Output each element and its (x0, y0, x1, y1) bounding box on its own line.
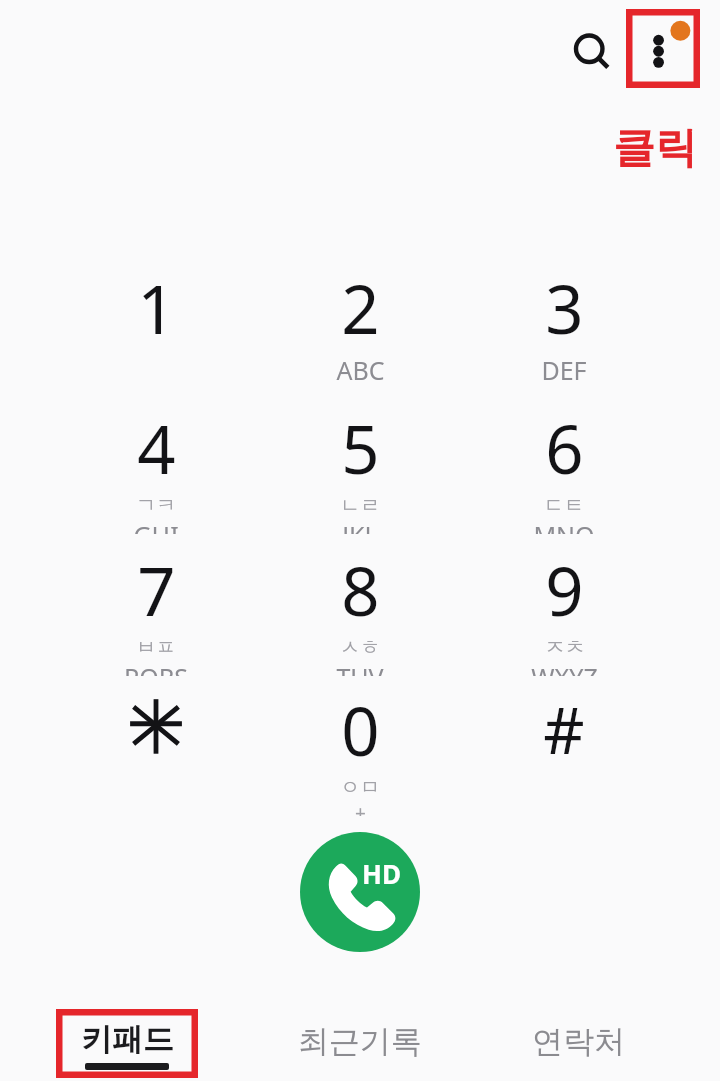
button[interactable]: 3 (472, 262, 656, 394)
button[interactable]: 7 (64, 544, 248, 676)
staticText: ㄷㅌ (544, 493, 584, 518)
button[interactable]: 8 (268, 544, 452, 676)
button[interactable]: 최근기록 (270, 1013, 450, 1075)
staticText: ABC (336, 353, 385, 387)
staticText: PQRS (124, 660, 188, 676)
button[interactable]: 0 (268, 684, 452, 816)
staticText: HD (362, 856, 401, 891)
button[interactable]: 9 (472, 544, 656, 676)
staticText: ㅇㅁ (340, 775, 380, 800)
staticText: 3 (545, 262, 584, 353)
staticText: 키패드 (81, 1020, 174, 1059)
staticText: ㄱㅋ (136, 493, 176, 518)
staticText: ㅂㅍ (136, 635, 176, 660)
button[interactable]: 연락처 (488, 1013, 668, 1075)
staticText: TUV (336, 660, 384, 676)
staticText: 클릭 (613, 122, 697, 175)
staticText: DEF (541, 353, 587, 387)
button[interactable]: 2 (268, 262, 452, 394)
button[interactable]: Call (300, 832, 420, 952)
staticText: 연락처 (532, 1022, 625, 1061)
staticText: 4 (137, 402, 176, 493)
staticText: 최근기록 (298, 1022, 422, 1061)
staticText: + (355, 800, 366, 816)
button[interactable]: 4 (64, 402, 248, 534)
staticText: ㅈㅊ (545, 635, 585, 660)
button[interactable]: Search (564, 24, 622, 82)
button[interactable]: 5 (268, 402, 452, 534)
staticText: 6 (545, 402, 584, 493)
staticText: GHI (133, 518, 179, 534)
staticText: 2 (341, 262, 380, 353)
staticText: # (543, 686, 585, 773)
staticText: ㄴㄹ (340, 493, 380, 518)
button[interactable]: Star (64, 684, 248, 804)
button[interactable]: 6 (472, 402, 656, 534)
button[interactable]: 키패드 (56, 1009, 198, 1078)
staticText: 0 (341, 684, 380, 775)
staticText: MNO (533, 518, 595, 534)
button[interactable]: Pound (472, 684, 656, 804)
staticText: 1 (137, 262, 176, 353)
button[interactable]: More options (626, 9, 700, 88)
staticText: ㅅㅎ (340, 635, 380, 660)
staticText: WXYZ (531, 660, 598, 676)
staticText: 9 (545, 544, 584, 635)
staticText: 7 (137, 544, 176, 635)
staticText: 5 (341, 402, 380, 493)
staticText: JKL (342, 518, 378, 534)
staticText: 8 (341, 544, 380, 635)
button[interactable]: 1 (64, 262, 248, 394)
